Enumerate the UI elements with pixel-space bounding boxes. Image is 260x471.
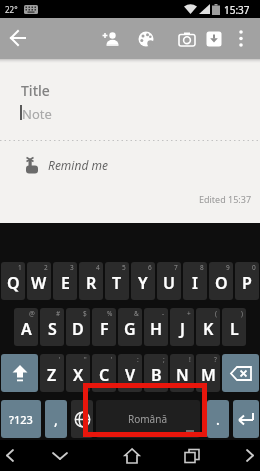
staticText: Y (138, 272, 148, 294)
staticText: J (180, 318, 185, 340)
staticText: O (215, 272, 228, 294)
button[interactable] (206, 31, 232, 57)
button[interactable] (240, 446, 258, 464)
staticText: ) (241, 309, 243, 318)
button[interactable]: S (40, 308, 64, 346)
button[interactable] (122, 446, 142, 466)
staticText: R (86, 272, 97, 294)
staticText: K (203, 318, 214, 340)
staticText: - (162, 309, 165, 318)
button[interactable]: , (45, 400, 67, 438)
button[interactable]: C (92, 354, 116, 392)
button[interactable]: Z (40, 354, 64, 392)
button[interactable]: E (53, 262, 77, 300)
staticText: + (187, 309, 191, 318)
staticText: 9 (226, 263, 230, 272)
staticText: C (99, 364, 110, 386)
staticText: A (21, 318, 32, 340)
staticText: X (73, 364, 84, 386)
button[interactable]: P (235, 262, 259, 300)
staticText: $ (83, 309, 87, 318)
staticText: Edited 15:37 (199, 193, 252, 205)
button[interactable]: N (170, 354, 194, 392)
staticText: V (125, 364, 136, 386)
button[interactable] (230, 28, 252, 50)
staticText: ' (111, 355, 113, 364)
button[interactable]: T (105, 262, 129, 300)
button[interactable] (178, 31, 204, 57)
staticText: & (134, 309, 139, 318)
button[interactable] (102, 31, 128, 57)
staticText: Title (21, 81, 50, 100)
button[interactable] (50, 446, 70, 466)
button[interactable]: Y (131, 262, 155, 300)
button[interactable]: Title (21, 81, 260, 101)
staticText: 3 (70, 263, 74, 272)
button[interactable]: W (27, 262, 51, 300)
button[interactable] (233, 400, 259, 438)
staticText: B (151, 364, 162, 386)
staticText: H (150, 318, 163, 340)
button[interactable]: G (118, 308, 142, 346)
button[interactable]: V (118, 354, 142, 392)
button[interactable]: R (79, 262, 103, 300)
button[interactable]: M (196, 354, 220, 392)
button[interactable]: H (144, 308, 168, 346)
button[interactable]: Remind me (24, 150, 146, 180)
staticText: 4 (96, 263, 100, 272)
staticText: , (54, 410, 58, 429)
staticText: L (230, 318, 239, 340)
button[interactable]: K (196, 308, 220, 346)
staticText: F (100, 318, 109, 340)
button[interactable]: O (209, 262, 233, 300)
staticText: ' (59, 355, 61, 364)
button[interactable]: J (170, 308, 194, 346)
staticText: # (56, 309, 61, 318)
staticText: 6 (148, 263, 152, 272)
staticText: G (124, 318, 136, 340)
button[interactable] (4, 24, 32, 52)
staticText: E (61, 272, 70, 294)
button[interactable] (71, 400, 93, 438)
button[interactable]: L (222, 308, 246, 346)
staticText: D (72, 318, 84, 340)
staticText: ; (163, 355, 165, 364)
staticText: I (192, 272, 198, 294)
staticText: 7 (174, 263, 178, 272)
staticText: . (216, 410, 220, 429)
button[interactable]: F (92, 308, 116, 346)
button[interactable]: Note (22, 105, 260, 123)
staticText: 2 (44, 263, 48, 272)
button[interactable]: . (207, 400, 229, 438)
staticText: % (107, 309, 113, 318)
staticText: Română (128, 412, 168, 426)
staticText: ?123 (9, 412, 33, 427)
staticText: Note (22, 105, 52, 123)
staticText: 0 (252, 263, 256, 272)
button[interactable]: A (14, 308, 38, 346)
button[interactable]: Română (96, 400, 200, 438)
button[interactable] (2, 446, 20, 464)
button[interactable] (222, 354, 259, 392)
button[interactable]: I (183, 262, 207, 300)
staticText: 22° (5, 4, 18, 15)
button[interactable]: U (157, 262, 181, 300)
staticText: P (242, 272, 252, 294)
staticText: M (201, 364, 216, 386)
staticText: N (176, 364, 189, 386)
button[interactable] (182, 446, 202, 466)
button[interactable]: B (144, 354, 168, 392)
staticText: T (112, 272, 122, 294)
button[interactable]: D (66, 308, 90, 346)
button[interactable] (138, 31, 164, 57)
staticText: S (48, 318, 57, 340)
staticText: 8 (200, 263, 204, 272)
button[interactable]: ?123 (1, 400, 41, 438)
staticText: 5 (122, 263, 126, 272)
staticText: U (163, 272, 175, 294)
button[interactable] (1, 354, 38, 392)
button[interactable]: Q (1, 262, 25, 300)
staticText: W (31, 272, 47, 294)
staticText: Q (7, 272, 20, 294)
button[interactable]: X (66, 354, 90, 392)
